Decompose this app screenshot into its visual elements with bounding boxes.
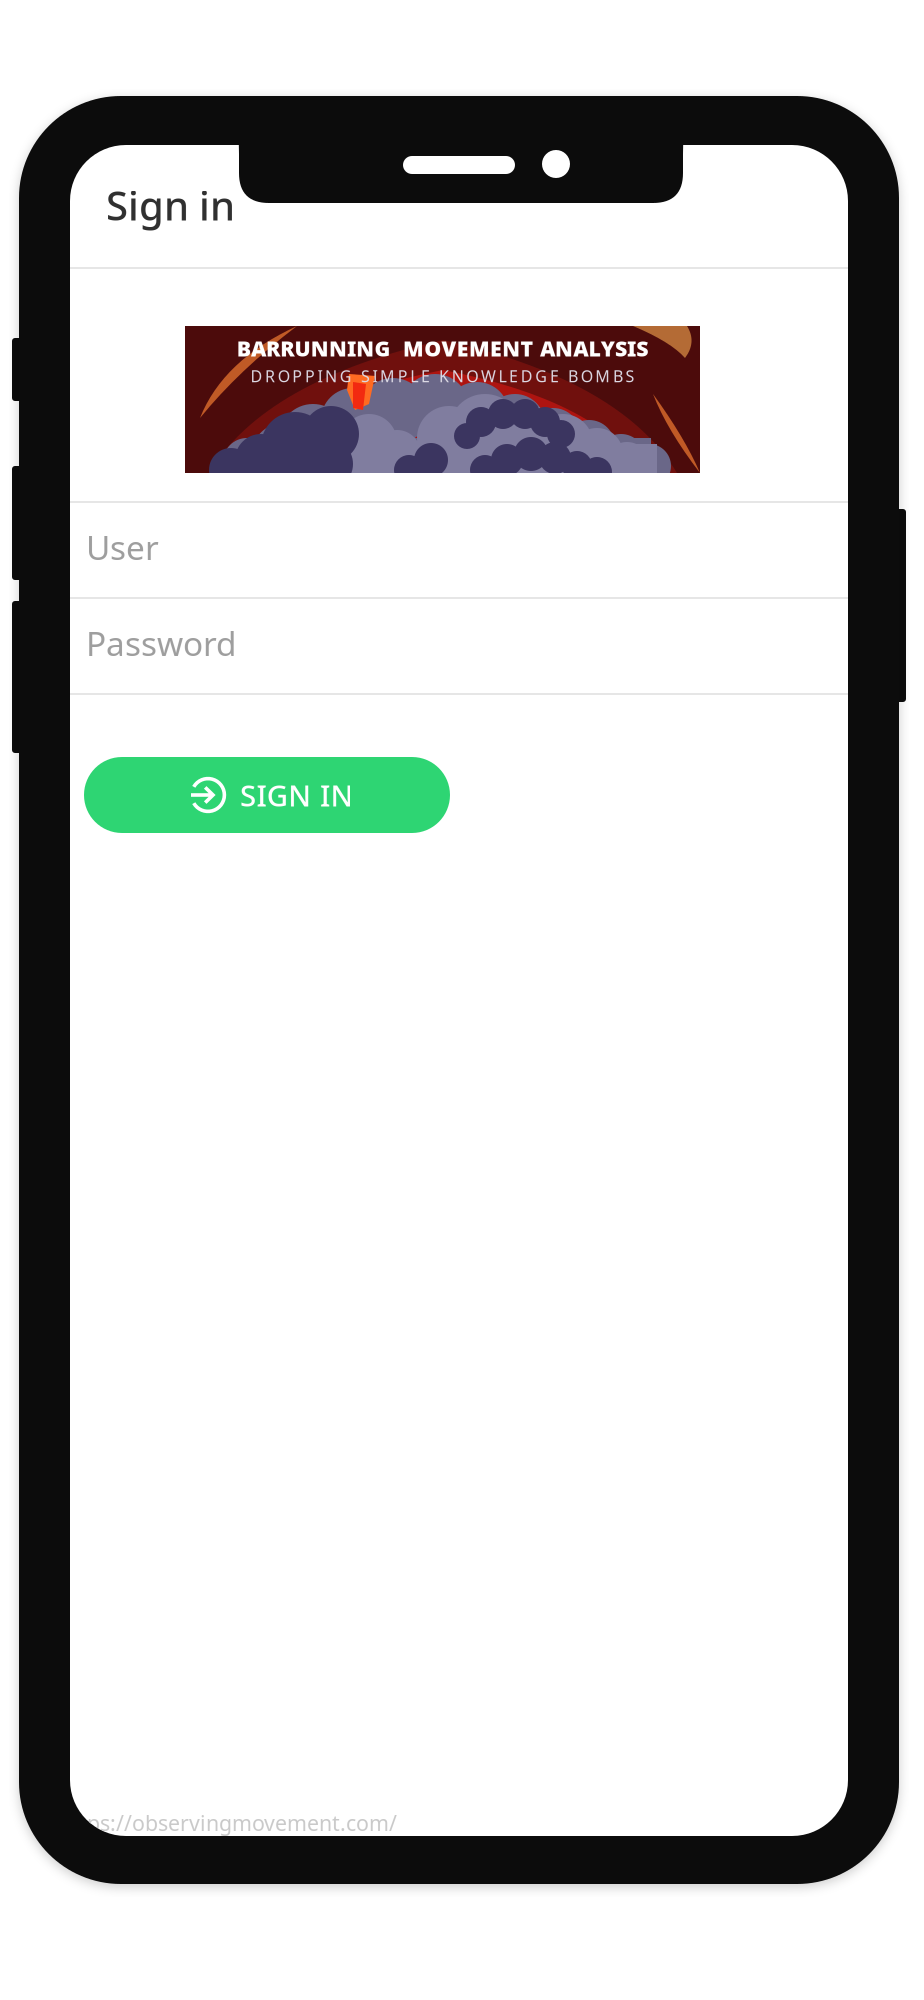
staticText: DROPPING SIMPLE KNOWLEDGE BOMBS: [250, 365, 634, 386]
staticText: User: [86, 525, 159, 569]
button[interactable]: SIGN IN: [84, 757, 450, 833]
staticText: Password: [86, 621, 237, 665]
staticText: https://observingmovement.com/: [58, 1809, 397, 1837]
staticText: SIGN IN: [240, 775, 353, 814]
staticText: BARRUNNING MOVEMENT ANALYSIS: [237, 334, 648, 362]
staticText: Sign in: [106, 178, 235, 231]
